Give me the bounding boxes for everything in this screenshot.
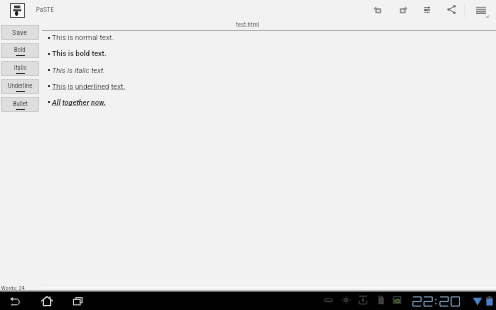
button[interactable]: Undo (369, 1, 386, 19)
staticText: test.html (236, 21, 260, 29)
button[interactable]: Underline (1, 79, 39, 94)
staticText: Bullet (13, 100, 28, 108)
button[interactable]: More options (471, 0, 491, 24)
staticText: Italic (14, 64, 27, 72)
button[interactable]: Recent apps (69, 292, 87, 310)
button[interactable]: Italic (1, 61, 39, 76)
staticText: Words: 24 (1, 284, 25, 291)
staticText: This is normal text. (52, 33, 114, 42)
staticText: This is bold text. (52, 49, 107, 58)
staticText: This is underlined text. (52, 82, 126, 91)
button[interactable]: Redo (395, 1, 412, 19)
button[interactable]: Home (38, 292, 56, 310)
staticText: PaSTE (36, 6, 54, 14)
staticText: Underline (8, 82, 33, 90)
staticText: Save (12, 28, 28, 37)
staticText: This is italic text. (52, 66, 106, 75)
button[interactable]: Share (442, 0, 461, 20)
staticText: Bold (14, 46, 26, 54)
button[interactable]: Back (7, 293, 24, 310)
button[interactable]: Text formatting (419, 1, 435, 19)
button[interactable]: Bullet (1, 97, 39, 112)
button[interactable]: PaSTE app icon (10, 3, 25, 18)
button[interactable]: Save (1, 25, 39, 40)
staticText: All together now. (52, 98, 106, 107)
button[interactable]: Bold (1, 43, 39, 58)
